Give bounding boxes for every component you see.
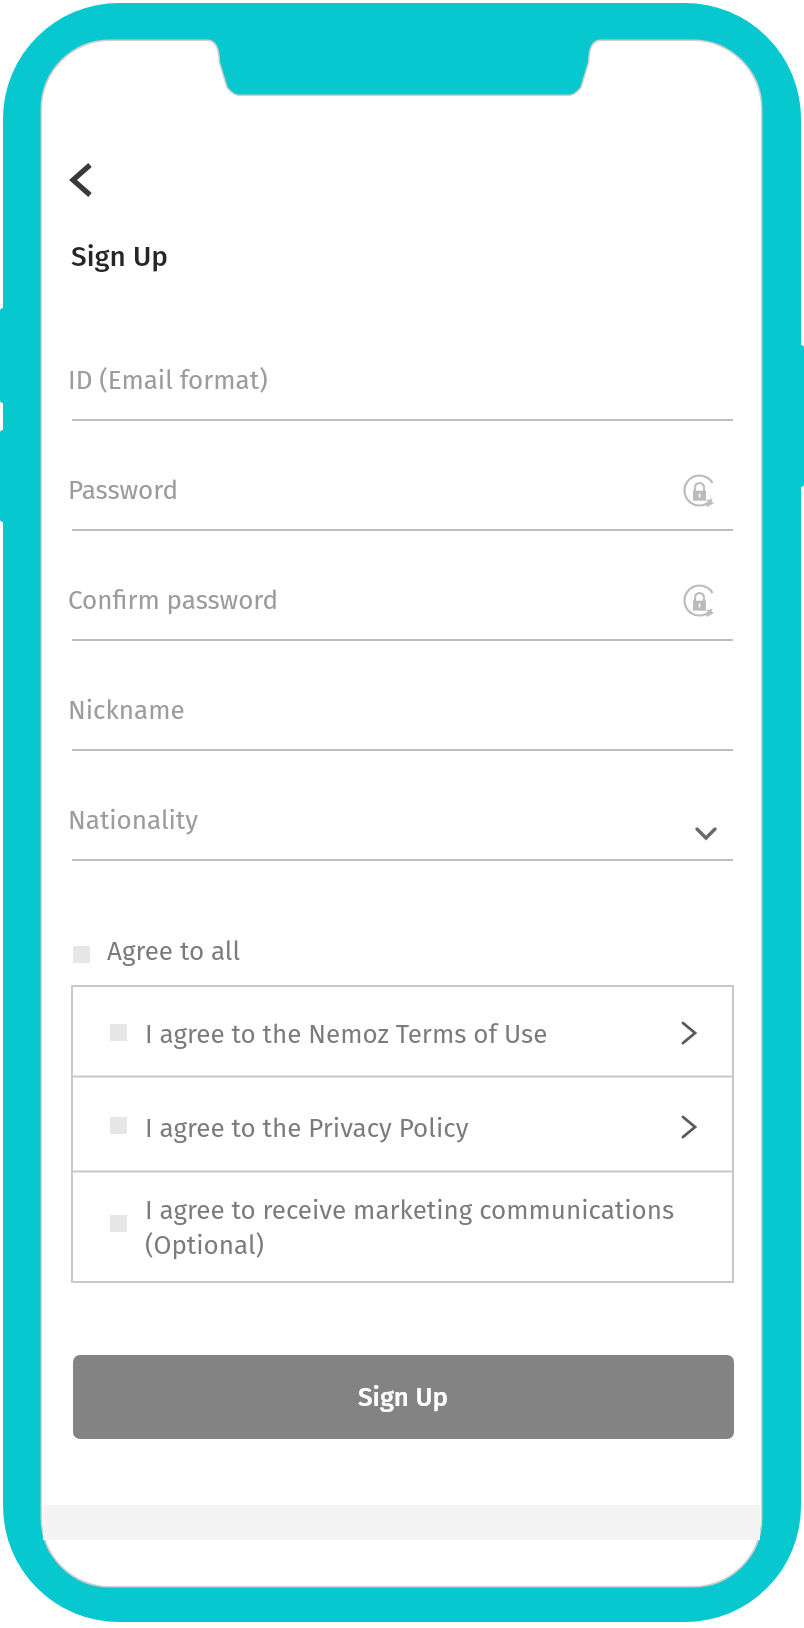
- staticText: Confirm password: [68, 585, 279, 616]
- button[interactable]: Password: [72, 453, 733, 531]
- staticText: ID (Email format): [68, 365, 268, 396]
- button[interactable]: View details: [672, 1110, 706, 1144]
- staticText: Agree to all: [107, 936, 241, 967]
- staticText: I agree to receive marketing communicati…: [145, 1195, 675, 1226]
- staticText: Nationality: [68, 805, 198, 836]
- staticText: I agree to the Privacy Policy: [145, 1113, 469, 1144]
- staticText: I agree to the Nemoz Terms of Use: [145, 1019, 548, 1050]
- button[interactable]: I agree to receive marketing communicati…: [72, 1172, 733, 1283]
- button[interactable]: I agree to the Nemoz Terms of Use: [72, 986, 733, 1077]
- button[interactable]: ID (Email format): [72, 343, 733, 421]
- button[interactable]: Password help: [683, 474, 716, 507]
- button[interactable]: Password help: [683, 584, 716, 617]
- button[interactable]: Agree to all: [64, 934, 254, 978]
- button[interactable]: View details: [672, 1016, 706, 1050]
- button[interactable]: Nickname: [72, 673, 733, 751]
- staticText: Nickname: [68, 695, 185, 726]
- button[interactable]: I agree to the Privacy Policy: [72, 1077, 733, 1172]
- staticText: Password: [68, 475, 179, 506]
- button[interactable]: Confirm password: [72, 563, 733, 641]
- staticText: Sign Up: [358, 1382, 449, 1413]
- staticText: Sign Up: [71, 240, 168, 274]
- button[interactable]: Nationality: [72, 783, 733, 861]
- staticText: (Optional): [145, 1230, 264, 1261]
- button[interactable]: Select nationality: [689, 817, 723, 851]
- button[interactable]: Back: [48, 150, 110, 212]
- button[interactable]: Sign Up: [73, 1355, 734, 1439]
